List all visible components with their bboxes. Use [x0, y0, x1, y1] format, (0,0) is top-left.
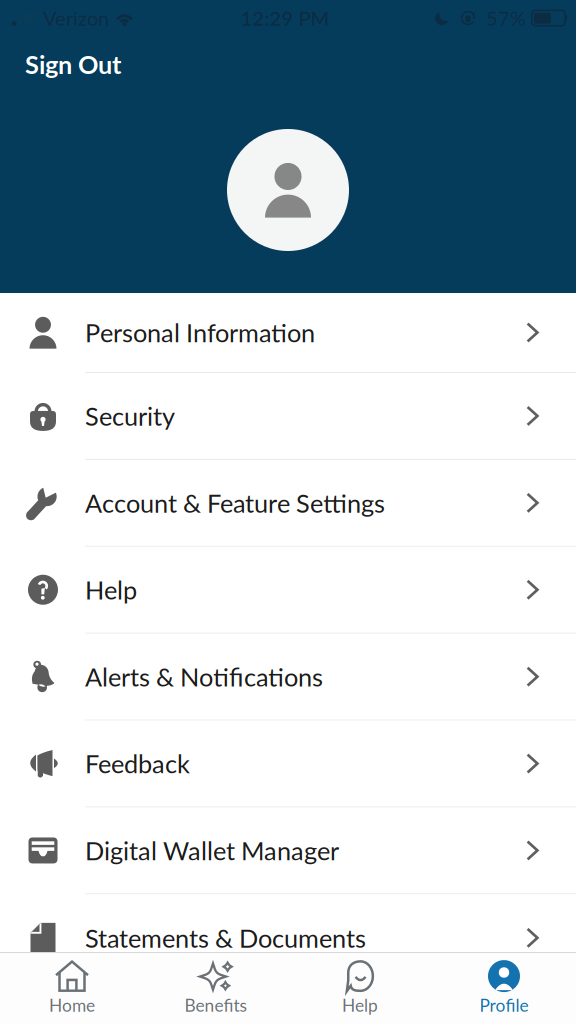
staticText: Alerts & Notifications	[85, 661, 323, 692]
button[interactable]: Sign Out	[0, 36, 139, 85]
staticText: Personal Information	[85, 317, 315, 348]
button[interactable]: Benefits	[144, 953, 288, 1024]
staticText: 57%	[486, 6, 526, 30]
button[interactable]: Security	[0, 373, 576, 460]
button[interactable]: Account & Feature Settings	[0, 460, 576, 547]
staticText: Profile	[479, 995, 528, 1015]
staticText: Security	[85, 401, 175, 431]
staticText: Sign Out	[25, 49, 121, 79]
button[interactable]: Help	[288, 953, 432, 1024]
staticText: Help	[85, 575, 137, 605]
button[interactable]: Statements & Documents	[0, 894, 576, 981]
staticText: Digital Wallet Manager	[85, 835, 339, 866]
button[interactable]: Digital Wallet Manager	[0, 807, 576, 894]
staticText: Verizon	[43, 6, 109, 30]
staticText: Help	[342, 995, 378, 1015]
staticText: Account & Feature Settings	[85, 488, 385, 518]
button[interactable]: Alerts & Notifications	[0, 634, 576, 721]
staticText: Benefits	[184, 995, 247, 1015]
staticText: Statements & Documents	[85, 923, 366, 953]
staticText: 12:29 PM	[240, 6, 329, 30]
button[interactable]: Help	[0, 547, 576, 634]
staticText: Home	[49, 995, 95, 1015]
staticText: Feedback	[85, 748, 190, 779]
button[interactable]: Personal Information	[0, 293, 576, 373]
button[interactable]: Profile	[432, 953, 576, 1024]
button[interactable]: Feedback	[0, 721, 576, 807]
button[interactable]: Home	[0, 953, 144, 1024]
